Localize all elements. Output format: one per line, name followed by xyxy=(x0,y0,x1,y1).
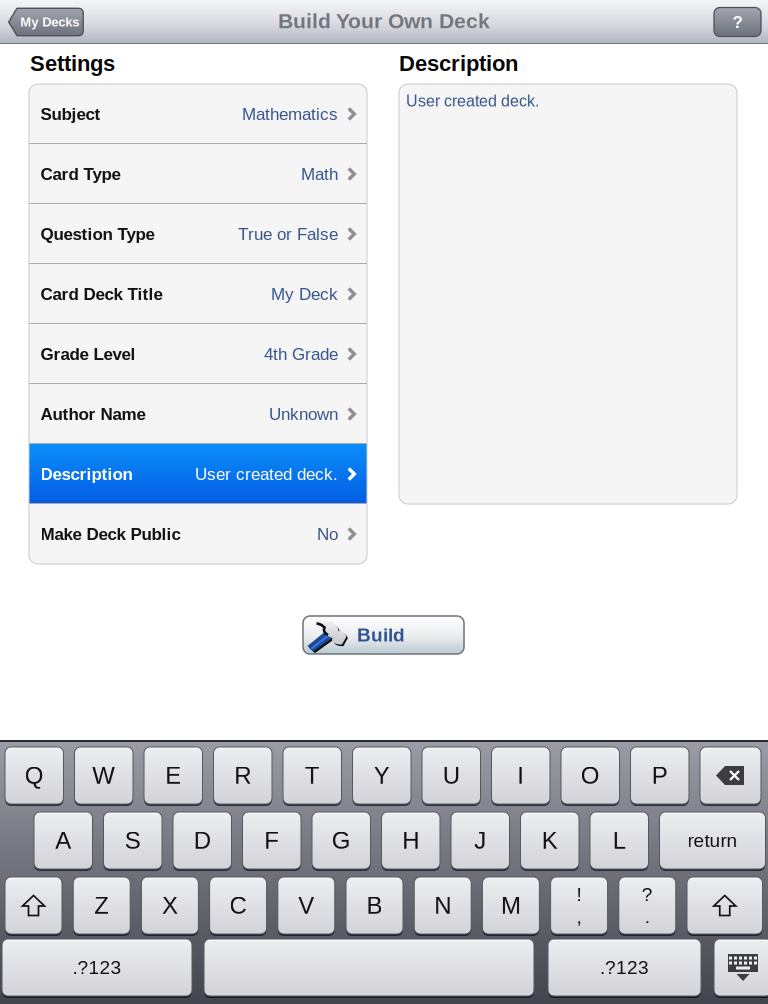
staticText: Description xyxy=(40,464,132,483)
staticText: L xyxy=(613,827,626,854)
button[interactable]: My Decks xyxy=(7,7,84,36)
button[interactable]: C xyxy=(210,877,267,934)
staticText: Grade Level xyxy=(40,344,135,363)
staticText: Q xyxy=(25,762,44,789)
button[interactable]: Card Deck Title xyxy=(29,264,367,324)
staticText: X xyxy=(162,892,178,919)
staticText: My Decks xyxy=(20,15,79,29)
staticText: Z xyxy=(94,892,109,919)
button[interactable]: T xyxy=(283,747,341,804)
button[interactable]: J xyxy=(451,812,509,869)
button[interactable]: ! xyxy=(551,877,608,934)
staticText: Make Deck Public xyxy=(40,524,180,543)
button[interactable]: Z xyxy=(73,877,130,934)
button[interactable]: E xyxy=(144,747,202,804)
staticText: Mathematics xyxy=(242,104,338,123)
staticText: ! xyxy=(577,884,582,905)
staticText: F xyxy=(264,827,279,854)
staticText: G xyxy=(332,827,351,854)
staticText: Card Type xyxy=(40,164,120,183)
button[interactable]: Shift xyxy=(687,877,762,934)
staticText: E xyxy=(165,762,181,789)
button[interactable]: V xyxy=(278,877,335,934)
button[interactable]: Author Name xyxy=(29,384,367,444)
staticText: R xyxy=(234,762,251,789)
staticText: , xyxy=(577,906,582,927)
button[interactable]: ? xyxy=(619,877,676,934)
button[interactable]: L xyxy=(590,812,648,869)
button[interactable]: S xyxy=(103,812,162,869)
staticText: C xyxy=(230,892,247,919)
staticText: Build xyxy=(357,624,405,646)
staticText: P xyxy=(652,762,668,789)
staticText: Question Type xyxy=(40,224,154,243)
button[interactable]: .?123 xyxy=(2,939,192,996)
button[interactable]: Question Type xyxy=(29,204,367,264)
button[interactable]: Help xyxy=(714,7,761,36)
staticText: Settings xyxy=(30,51,115,76)
staticText: A xyxy=(55,827,71,854)
button[interactable]: G xyxy=(312,812,370,869)
staticText: V xyxy=(298,892,314,919)
staticText: Card Deck Title xyxy=(40,284,162,303)
staticText: User created deck. xyxy=(406,92,539,110)
button[interactable]: Grade Level xyxy=(29,324,367,384)
button[interactable]: W xyxy=(74,747,133,804)
button[interactable]: Card Type xyxy=(29,144,367,204)
button[interactable]: Build xyxy=(303,616,464,654)
staticText: No xyxy=(317,524,338,543)
button[interactable]: M xyxy=(482,877,539,934)
staticText: ? xyxy=(732,12,742,31)
staticText: True or False xyxy=(238,224,338,243)
staticText: Subject xyxy=(40,104,100,123)
button[interactable]: X xyxy=(141,877,198,934)
button[interactable]: .?123 xyxy=(548,939,701,996)
staticText: K xyxy=(542,827,558,854)
staticText: M xyxy=(501,892,521,919)
staticText: Unknown xyxy=(269,404,338,423)
staticText: Description xyxy=(399,51,518,76)
button[interactable]: N xyxy=(414,877,471,934)
staticText: . xyxy=(645,906,650,927)
button[interactable]: Y xyxy=(352,747,411,804)
button[interactable]: F xyxy=(242,812,301,869)
staticText: I xyxy=(517,762,524,789)
staticText: .?123 xyxy=(72,957,121,978)
button[interactable]: R xyxy=(213,747,272,804)
button[interactable]: I xyxy=(491,747,550,804)
staticText: return xyxy=(687,830,737,851)
staticText: B xyxy=(366,892,382,919)
button[interactable]: H xyxy=(381,812,440,869)
staticText: H xyxy=(402,827,419,854)
staticText: S xyxy=(125,827,141,854)
button[interactable]: A xyxy=(34,812,92,869)
staticText: N xyxy=(434,892,451,919)
button[interactable]: D xyxy=(173,812,231,869)
button[interactable]: P xyxy=(630,747,689,804)
staticText: User created deck. xyxy=(195,464,338,483)
staticText: U xyxy=(443,762,460,789)
staticText: J xyxy=(474,827,486,854)
button[interactable]: Description xyxy=(29,444,367,504)
button[interactable]: Shift xyxy=(5,877,62,934)
button[interactable]: return xyxy=(659,812,765,869)
button[interactable]: Make Deck Public xyxy=(29,504,367,564)
staticText: O xyxy=(581,762,600,789)
staticText: D xyxy=(194,827,211,854)
staticText: T xyxy=(305,762,320,789)
button[interactable]: U xyxy=(422,747,480,804)
staticText: Y xyxy=(374,762,390,789)
button[interactable]: space xyxy=(204,939,534,996)
button[interactable]: Delete xyxy=(700,747,761,804)
button[interactable]: K xyxy=(520,812,579,869)
staticText: Author Name xyxy=(40,404,145,423)
staticText: Build Your Own Deck xyxy=(278,9,490,33)
button[interactable]: Subject xyxy=(29,84,367,144)
staticText: Math xyxy=(301,164,338,183)
button[interactable]: Q xyxy=(5,747,63,804)
button[interactable]: B xyxy=(346,877,403,934)
staticText: .?123 xyxy=(600,957,649,978)
button[interactable]: Hide Keyboard xyxy=(714,939,768,996)
staticText: 4th Grade xyxy=(264,344,338,363)
button[interactable]: O xyxy=(561,747,619,804)
